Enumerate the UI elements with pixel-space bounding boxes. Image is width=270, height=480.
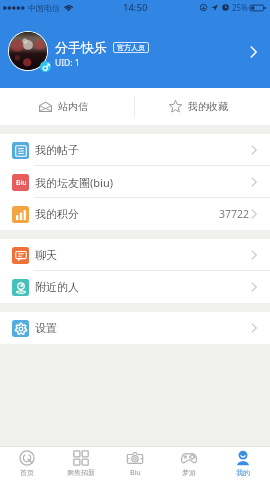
staticText: 中国电信 xyxy=(28,3,60,13)
staticText: 我的 xyxy=(236,468,250,477)
staticText: Biu xyxy=(130,468,141,478)
staticText: 设置 xyxy=(35,321,57,335)
button[interactable]: Biu xyxy=(108,447,162,480)
button[interactable]: 梦游 xyxy=(162,447,216,480)
button[interactable]: 站内信 xyxy=(0,88,134,125)
staticText: 我的收藏 xyxy=(188,100,228,113)
staticText: UID: 1 xyxy=(55,57,80,69)
staticText: 分手快乐 xyxy=(55,39,107,55)
button[interactable]: 聊天 xyxy=(0,239,270,271)
staticText: 我的坛友圈(biu) xyxy=(35,175,114,190)
staticText: 站内信 xyxy=(58,100,88,113)
staticText: 官方人员 xyxy=(117,43,145,52)
button[interactable]: 附近的人 xyxy=(0,271,270,303)
staticText: 我的积分 xyxy=(35,207,79,221)
staticText: Biu xyxy=(16,178,27,188)
button[interactable]: 我的 xyxy=(216,447,270,480)
staticText: 我的帖子 xyxy=(35,143,79,157)
button[interactable]: 首页 xyxy=(0,447,54,480)
button[interactable]: 我的积分 xyxy=(0,198,270,230)
other: Open profile xyxy=(250,46,257,58)
staticText: 25% xyxy=(232,2,248,13)
staticText: 首页 xyxy=(20,468,34,477)
button[interactable]: 聚焦招新 xyxy=(54,447,108,480)
button[interactable]: 设置 xyxy=(0,312,270,344)
button[interactable]: 我的帖子 xyxy=(0,134,270,166)
staticText: 梦游 xyxy=(182,468,196,477)
staticText: 聊天 xyxy=(35,248,57,262)
staticText: 37722 xyxy=(219,207,250,221)
button[interactable]: 分手快乐 xyxy=(8,29,262,75)
staticText: 14:50 xyxy=(123,1,148,14)
button[interactable]: 我的收藏 xyxy=(135,88,270,125)
staticText: 附近的人 xyxy=(35,280,79,294)
staticText: 聚焦招新 xyxy=(67,468,95,477)
button[interactable]: Biu xyxy=(0,166,270,198)
